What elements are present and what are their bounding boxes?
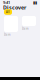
- staticText: All: [6, 10, 10, 14]
- staticText: Item: [4, 33, 10, 36]
- staticText: Discover: [3, 4, 26, 11]
- staticText: ▮▮: [33, 0, 37, 5]
- staticText: 9:41: [3, 0, 10, 5]
- staticText: Item: [22, 27, 28, 30]
